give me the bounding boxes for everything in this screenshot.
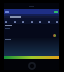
button[interactable]: Quick action — [56, 21, 58, 23]
button[interactable]: Quick action — [5, 21, 7, 23]
button[interactable]: Record — [28, 62, 36, 70]
button[interactable]: Quick action — [48, 21, 50, 23]
button[interactable] — [4, 56, 59, 59]
button[interactable] — [4, 9, 59, 14]
button[interactable]: Quick action — [14, 21, 16, 23]
button[interactable] — [4, 16, 59, 18]
button[interactable]: Quick action — [22, 21, 24, 23]
button[interactable]: Quick action — [39, 21, 41, 23]
button[interactable]: Quick action — [31, 21, 33, 23]
